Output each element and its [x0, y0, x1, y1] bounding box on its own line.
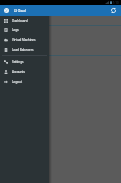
- button[interactable]: Settings: [0, 57, 49, 67]
- button[interactable]: Virtual Machines: [0, 35, 49, 45]
- staticText: Logout: [12, 80, 22, 84]
- button[interactable]: Logout: [0, 77, 49, 87]
- button[interactable]: Accounts: [0, 67, 49, 77]
- staticText: 1:10: [113, 1, 119, 5]
- button[interactable]: Load Balancers: [0, 45, 49, 55]
- staticText: Virtual Machines: [12, 38, 36, 42]
- button[interactable]: Logs: [0, 25, 49, 35]
- staticText: Accounts: [12, 70, 25, 74]
- staticText: Load Balancers: [12, 48, 34, 52]
- staticText: LS Cloud: [14, 9, 26, 13]
- staticText: Logs: [12, 28, 19, 32]
- button[interactable]: Refresh: [108, 5, 119, 16]
- staticText: Dashboard: [12, 19, 28, 23]
- button[interactable]: Dashboard: [0, 16, 49, 26]
- staticText: Settings: [12, 60, 24, 64]
